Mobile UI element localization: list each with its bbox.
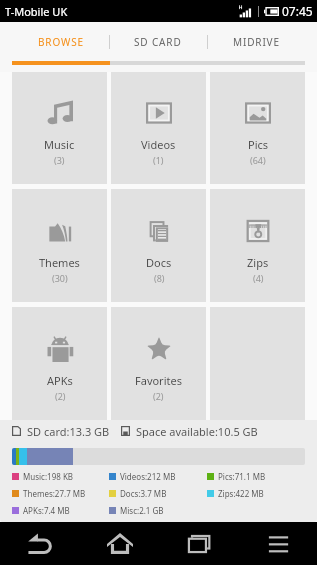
staticText: (30): [52, 272, 68, 284]
staticText: Misc:2.1 GB: [120, 505, 164, 516]
staticText: 07:45: [282, 3, 313, 19]
staticText: (3): [54, 154, 65, 166]
staticText: Themes:27.7 MB: [23, 488, 86, 499]
staticText: APKs:7.4 MB: [23, 505, 70, 516]
button[interactable]: Menu: [238, 522, 317, 565]
staticText: (1): [153, 154, 164, 166]
button[interactable]: Docs: [111, 189, 206, 302]
staticText: Pics:71.1 MB: [218, 471, 266, 482]
button[interactable]: Home: [80, 522, 159, 565]
staticText: MIDRIVE: [233, 35, 280, 49]
staticText: SD card:13.3 GB: [27, 424, 110, 438]
staticText: Space available:10.5 GB: [136, 424, 258, 438]
button[interactable]: MIDRIVE: [207, 22, 305, 61]
staticText: Videos: [141, 137, 176, 152]
staticText: Favorites: [135, 373, 182, 388]
button[interactable]: Zips: [210, 189, 305, 302]
staticText: Videos:212 MB: [120, 471, 176, 482]
button[interactable]: Videos: [111, 72, 206, 184]
staticText: (64): [250, 154, 266, 166]
button[interactable]: Pics: [210, 72, 305, 184]
button[interactable]: Recents: [159, 522, 238, 565]
staticText: Zips: [247, 255, 269, 270]
staticText: T-Mobile UK: [5, 4, 68, 19]
staticText: Music:198 KB: [23, 471, 74, 482]
staticText: Pics: [248, 137, 269, 152]
staticText: (8): [154, 272, 165, 284]
staticText: (2): [55, 390, 66, 402]
staticText: Music: [44, 137, 75, 152]
button[interactable]: Themes: [12, 189, 107, 302]
staticText: Zips:422 MB: [218, 488, 264, 499]
staticText: SD CARD: [134, 35, 182, 49]
staticText: Docs: [146, 255, 172, 270]
staticText: Themes: [39, 255, 80, 270]
button[interactable]: SD CARD: [109, 22, 207, 61]
button[interactable]: APKs: [12, 307, 107, 420]
staticText: (4): [253, 272, 264, 284]
button[interactable]: Music: [12, 72, 107, 184]
staticText: (2): [153, 390, 164, 402]
button[interactable]: BROWSE: [12, 22, 109, 61]
staticText: Docs:3.7 MB: [120, 488, 167, 499]
staticText: BROWSE: [38, 35, 84, 49]
button[interactable]: Back: [0, 522, 80, 565]
staticText: APKs: [47, 373, 73, 388]
button[interactable]: Favorites: [111, 307, 206, 420]
